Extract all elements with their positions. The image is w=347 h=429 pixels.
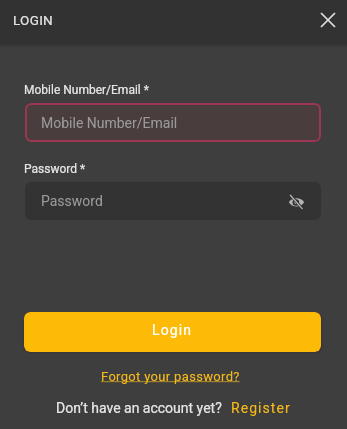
button[interactable]: Forgot your password? <box>95 367 246 386</box>
button[interactable]: Login <box>24 312 321 352</box>
staticText: Password * <box>24 162 86 176</box>
staticText: Forgot your password? <box>101 369 240 384</box>
button[interactable]: Mobile Number/Email <box>25 103 321 142</box>
button[interactable]: Password <box>25 182 321 220</box>
staticText: Password <box>41 193 103 209</box>
staticText: Register <box>231 400 291 416</box>
staticText: LOGIN <box>13 12 53 28</box>
staticText: Mobile Number/Email * <box>24 83 149 97</box>
staticText: Don’t have an account yet? <box>56 400 222 416</box>
staticText: Mobile Number/Email <box>41 115 178 131</box>
button[interactable]: Close <box>311 3 345 37</box>
button[interactable]: Show password <box>283 188 309 214</box>
staticText: Login <box>152 322 193 338</box>
button[interactable]: Register <box>231 400 291 416</box>
